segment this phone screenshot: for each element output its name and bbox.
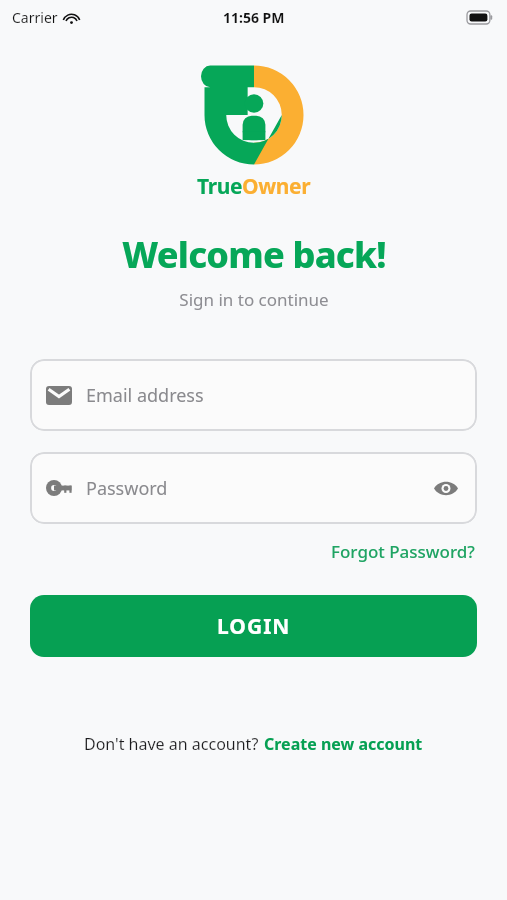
staticText: Password bbox=[86, 476, 429, 501]
staticText: Welcome back! bbox=[122, 230, 386, 279]
staticText: Carrier bbox=[12, 8, 58, 27]
button[interactable]: Create new account bbox=[263, 730, 424, 758]
button[interactable]: Password bbox=[30, 452, 477, 524]
button[interactable]: Forgot Password? bbox=[329, 536, 477, 567]
staticText: Sign in to continue bbox=[179, 288, 329, 311]
button[interactable]: Show password bbox=[429, 471, 463, 505]
staticText: Forgot Password? bbox=[331, 540, 475, 563]
button[interactable]: Email address bbox=[30, 359, 477, 431]
staticText: Create new account bbox=[264, 733, 423, 755]
staticText: TrueOwner bbox=[197, 172, 311, 201]
staticText: Don't have an account? bbox=[84, 733, 263, 755]
staticText: 11:56 PM bbox=[223, 8, 285, 27]
staticText: Email address bbox=[86, 383, 204, 408]
button[interactable]: LOGIN bbox=[30, 595, 477, 657]
staticText: LOGIN bbox=[217, 612, 291, 641]
